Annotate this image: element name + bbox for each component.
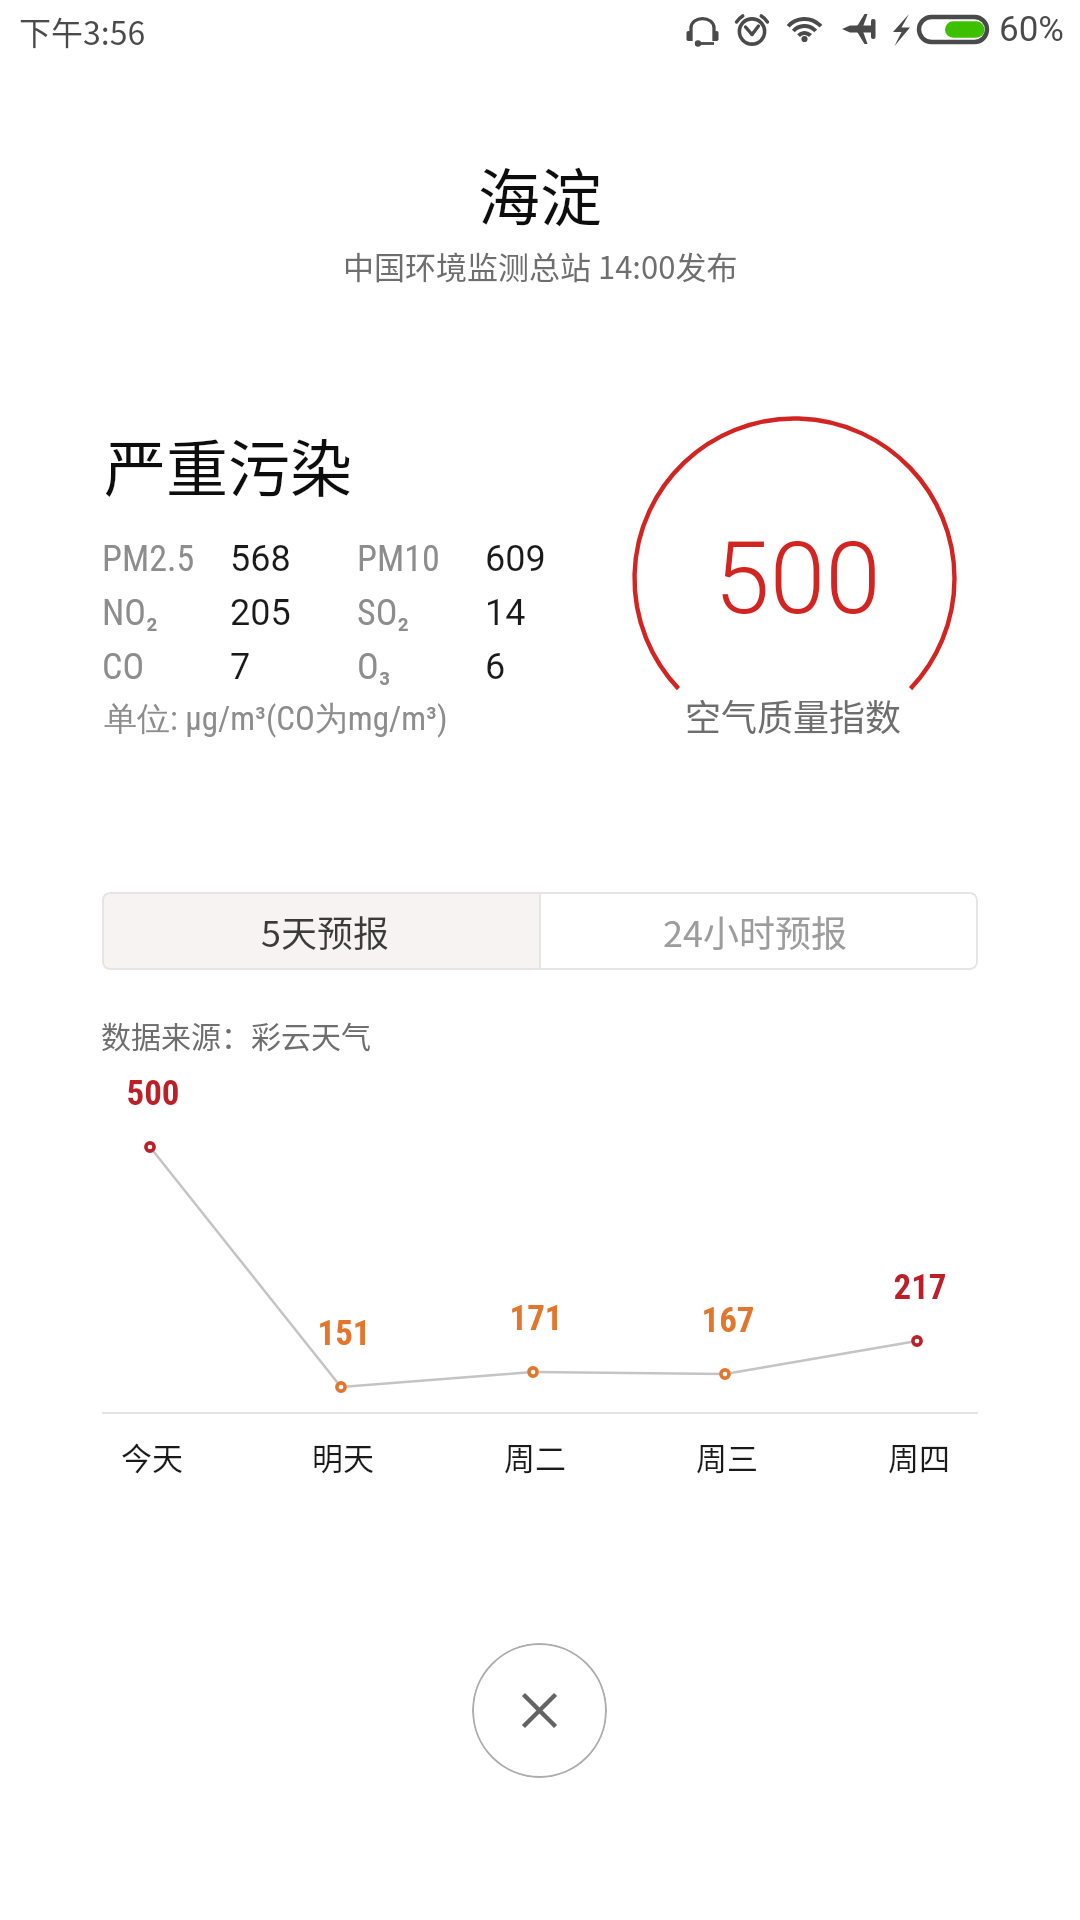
staticText: 500 [126,1073,180,1114]
button[interactable]: 24小时预报 [541,892,978,970]
staticText: 空气质量指数 [685,689,902,741]
staticText: PM2.5 [102,538,195,580]
staticText: 明天 [312,1434,374,1479]
staticText: 周二 [504,1434,566,1479]
staticText: 217 [893,1267,947,1308]
staticText: 5天预报 [261,905,389,957]
staticText: 609 [485,538,546,580]
staticText: 205 [230,592,291,634]
staticText: 167 [701,1300,755,1341]
staticText: 500 [714,520,881,637]
staticText: 中国环境监测总站 14:00发布 [343,243,738,288]
staticText: 今天 [121,1434,183,1479]
staticText: 6 [485,646,506,688]
staticText: 568 [230,538,291,580]
staticText: 周三 [696,1434,758,1479]
staticText: 周四 [888,1434,950,1479]
staticText: PM10 [357,538,440,580]
button[interactable]: 5天预报 [102,892,539,970]
staticText: 严重污染 [104,420,353,510]
staticText: 海淀 [478,149,603,239]
staticText: NO₂ [102,592,158,634]
staticText: O₃ [357,646,391,688]
staticText: 下午3:56 [19,8,146,54]
staticText: 14 [485,592,526,634]
staticText: 单位: μg/m³(CO为mg/m³) [104,698,448,740]
staticText: 24小时预报 [663,905,847,957]
button[interactable]: Close [472,1643,607,1778]
staticText: SO₂ [357,592,410,634]
staticText: 151 [317,1313,371,1354]
staticText: 60% [999,9,1064,50]
staticText: 数据来源：彩云天气 [101,1013,371,1056]
staticText: 7 [230,646,251,688]
staticText: CO [102,646,145,688]
staticText: 171 [509,1298,563,1339]
